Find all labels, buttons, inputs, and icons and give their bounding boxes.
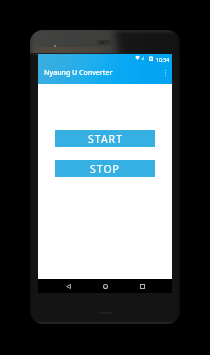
button[interactable]: START <box>55 130 155 147</box>
button[interactable]: STOP <box>55 160 155 177</box>
staticText: 10:34 <box>156 56 170 63</box>
button[interactable]: Back <box>57 279 79 293</box>
button[interactable]: Home <box>94 279 116 293</box>
button[interactable]: Recents <box>131 279 153 293</box>
staticText: STOP <box>90 162 120 176</box>
staticText: START <box>88 132 123 146</box>
staticText: Nyaung U Converter <box>44 68 113 78</box>
button[interactable]: More options <box>159 62 171 83</box>
